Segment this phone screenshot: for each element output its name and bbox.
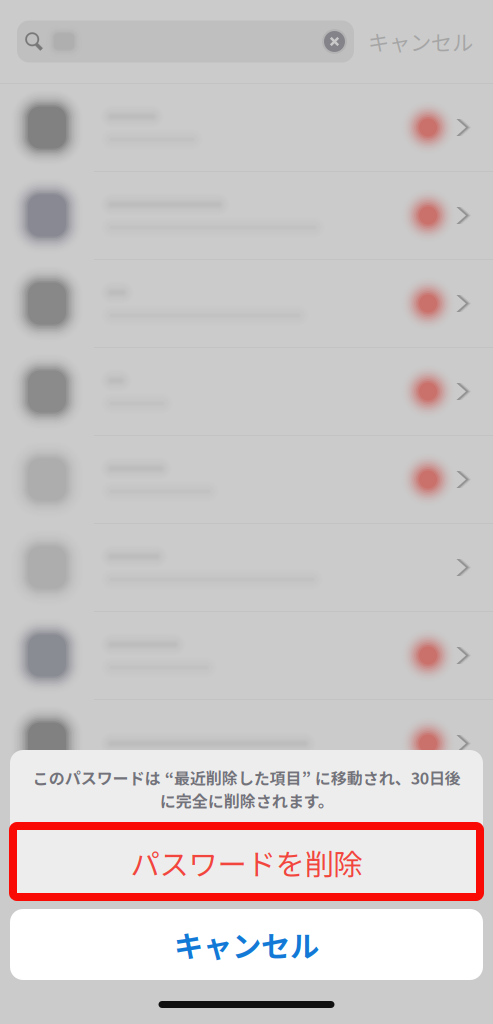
- staticText: このパスワードは “最近削除した項目” に移動され、30日後 に完全に削除されま…: [32, 766, 460, 812]
- button[interactable]: キャンセル: [354, 26, 489, 57]
- staticText: キャンセル: [368, 26, 473, 57]
- button[interactable]: パスワードを削除: [10, 826, 483, 899]
- staticText: パスワードを削除: [130, 841, 362, 884]
- button[interactable]: キャンセル: [10, 909, 483, 980]
- staticText: キャンセル: [174, 923, 319, 966]
